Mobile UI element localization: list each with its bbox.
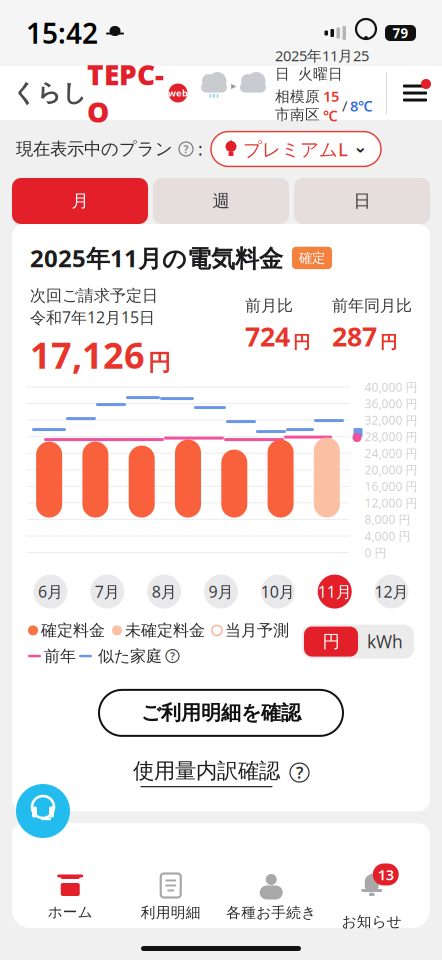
staticText: 相模原市南区 bbox=[275, 88, 320, 124]
staticText: 6月 bbox=[38, 581, 63, 602]
staticText: 確定料金 bbox=[41, 621, 105, 640]
staticText: 各種お手続き bbox=[226, 903, 316, 921]
button[interactable]: 10月 bbox=[261, 575, 295, 609]
staticText: 7月 bbox=[95, 581, 120, 602]
staticText: 前年同月比 bbox=[332, 296, 412, 316]
staticText: お知らせ bbox=[342, 912, 402, 930]
staticText: 未確定料金 bbox=[125, 621, 205, 640]
staticText: 8月 bbox=[152, 581, 177, 602]
button[interactable]: 9月 bbox=[204, 575, 238, 609]
button[interactable]: ご利用明細を確認 bbox=[99, 690, 343, 736]
button[interactable]: 12月 bbox=[375, 575, 409, 609]
staticText: ? bbox=[296, 762, 303, 783]
staticText: / bbox=[342, 96, 347, 115]
staticText: 287 bbox=[332, 318, 377, 354]
staticText: 2025年11月の電気料金 bbox=[30, 242, 283, 274]
staticText: 36,000 円 bbox=[364, 396, 417, 412]
staticText: 0 円 bbox=[364, 545, 386, 560]
staticText: 令和7年12月15日 bbox=[30, 306, 155, 328]
staticText: 15℃ bbox=[323, 86, 339, 125]
staticText: ⌄ bbox=[353, 137, 368, 156]
button[interactable]: 各種お手続き bbox=[221, 866, 321, 928]
staticText: 週 bbox=[212, 190, 229, 212]
staticText: 15:42 bbox=[26, 14, 98, 52]
staticText: 40,000 円 bbox=[364, 379, 417, 395]
button[interactable]: 使用量内訳確認 bbox=[133, 758, 309, 787]
staticText: 日 bbox=[353, 190, 370, 212]
staticText: 12月 bbox=[375, 581, 409, 602]
staticText: 現在表示中のプラン bbox=[16, 138, 173, 160]
staticText: 724 bbox=[245, 318, 290, 354]
staticText: web bbox=[168, 87, 188, 99]
staticText: 17,126 bbox=[30, 331, 145, 379]
staticText: 似た家庭 bbox=[98, 646, 162, 666]
staticText: 次回ご請求予定日 bbox=[30, 286, 158, 306]
staticText: 月 bbox=[71, 190, 88, 212]
staticText: 利用明細 bbox=[141, 903, 201, 921]
staticText: 円 bbox=[148, 349, 171, 376]
staticText: 前月比 bbox=[245, 296, 293, 316]
button[interactable]: 月 bbox=[12, 178, 148, 224]
button[interactable]: kWh bbox=[358, 627, 412, 657]
button[interactable]: 6月 bbox=[33, 575, 67, 609]
staticText: 16,000 円 bbox=[364, 478, 417, 494]
staticText: ? bbox=[183, 142, 188, 156]
staticText: 2025年11月25日 火曜日 bbox=[275, 46, 369, 83]
staticText: kWh bbox=[367, 630, 403, 653]
staticText: 32,000 円 bbox=[364, 412, 417, 428]
staticText: 円 bbox=[380, 332, 397, 353]
staticText: 28,000 円 bbox=[364, 429, 417, 445]
staticText: ? bbox=[170, 649, 175, 663]
staticText: 79 bbox=[392, 24, 408, 42]
staticText: ▸ bbox=[231, 79, 236, 91]
staticText: プレミアムL bbox=[243, 137, 348, 161]
button[interactable]: プレミアムL bbox=[211, 132, 381, 166]
staticText: くらし bbox=[12, 78, 87, 108]
button[interactable]: メニュー bbox=[398, 76, 432, 110]
button[interactable]: 日 bbox=[294, 178, 430, 224]
staticText: 当月予測 bbox=[225, 621, 289, 640]
button[interactable]: 8月 bbox=[147, 575, 181, 609]
staticText: 9月 bbox=[208, 581, 233, 602]
staticText: 円 bbox=[293, 332, 310, 353]
staticText: 前年 bbox=[44, 646, 76, 666]
staticText: 8,000 円 bbox=[364, 511, 410, 527]
staticText: 4,000 円 bbox=[364, 528, 410, 544]
staticText: 使用量内訳確認 bbox=[133, 758, 280, 784]
staticText: 確定 bbox=[299, 250, 325, 266]
staticText: 11月 bbox=[318, 581, 352, 602]
staticText: 8℃ bbox=[350, 96, 373, 115]
staticText: : bbox=[198, 137, 203, 160]
staticText: ホーム bbox=[48, 903, 93, 921]
button[interactable]: 7月 bbox=[90, 575, 124, 609]
button[interactable]: 週 bbox=[153, 178, 289, 224]
button[interactable]: 11月 bbox=[318, 575, 352, 609]
staticText: 円 bbox=[322, 631, 339, 652]
staticText: 12,000 円 bbox=[364, 495, 417, 511]
button[interactable]: 13 bbox=[321, 866, 422, 928]
staticText: 24,000 円 bbox=[364, 445, 417, 461]
button[interactable]: 利用明細 bbox=[120, 866, 221, 928]
staticText: 20,000 円 bbox=[364, 462, 417, 478]
staticText: 13 bbox=[378, 865, 394, 884]
staticText: 10月 bbox=[261, 581, 295, 602]
button[interactable]: 円 bbox=[304, 627, 358, 657]
button[interactable]: ホーム bbox=[20, 866, 120, 928]
button[interactable]: サポート bbox=[16, 784, 70, 838]
staticText: ご利用明細を確認 bbox=[141, 701, 301, 725]
staticText: TEPCO bbox=[87, 56, 164, 130]
